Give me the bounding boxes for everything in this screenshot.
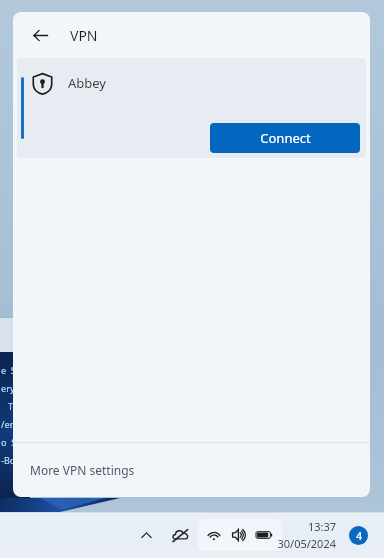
staticText: Abbey [68,74,106,92]
staticText: More VPN settings [30,462,135,478]
staticText: o S [1,436,17,448]
staticText: /en [1,418,16,430]
staticText: -Bo [1,454,16,466]
button[interactable]: Show hidden icons [132,521,160,549]
staticText: Connect [260,129,311,147]
button[interactable]: 4 new notifications [349,526,368,545]
staticText: 30/05/2024 [277,536,336,551]
button[interactable]: Network, sound and battery settings [198,519,282,551]
button[interactable]: Back [24,19,56,51]
staticText: VPN [70,26,98,45]
staticText: T [1,400,14,412]
button[interactable]: Abbey [17,58,366,158]
staticText: e S [1,364,16,376]
staticText: ery [1,382,15,394]
staticText: 13:37 [307,519,336,534]
button[interactable]: Connect [210,123,360,153]
button[interactable]: More VPN settings [13,443,370,497]
button[interactable]: OneDrive not signed in [166,521,194,549]
staticText: 4 [356,529,362,543]
button[interactable]: 13:37 [277,519,336,551]
